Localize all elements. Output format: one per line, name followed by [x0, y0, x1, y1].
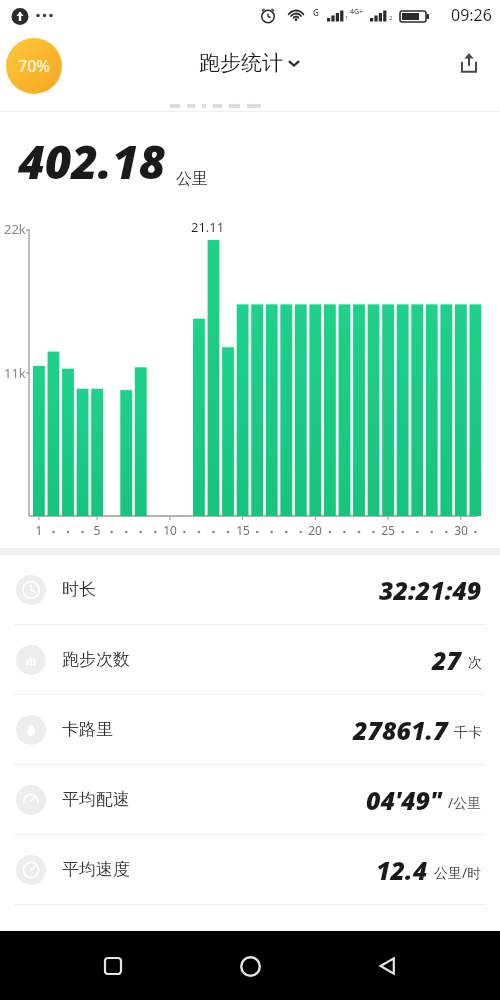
- staticText: 402.18: [18, 130, 166, 193]
- staticText: 2: [389, 14, 393, 22]
- button[interactable]: 卡路里: [0, 695, 500, 764]
- staticText: 27: [432, 643, 462, 677]
- staticText: 4G+: [350, 7, 364, 17]
- button[interactable]: Back: [363, 942, 411, 990]
- button[interactable]: 跑步统计: [199, 50, 301, 76]
- staticText: 5: [88, 522, 106, 538]
- staticText: 27861.7: [353, 713, 448, 747]
- staticText: 30: [452, 522, 470, 538]
- staticText: 10: [161, 522, 179, 538]
- button[interactable]: Home: [226, 942, 274, 990]
- staticText: 15: [234, 522, 252, 538]
- staticText: G: [313, 7, 319, 18]
- staticText: 04'49": [366, 783, 442, 817]
- staticText: 12.4: [376, 853, 428, 887]
- staticText: 跑步统计: [199, 50, 283, 76]
- staticText: 时长: [62, 579, 96, 600]
- button[interactable]: 平均配速: [0, 765, 500, 834]
- staticText: 32:21:49: [379, 573, 482, 607]
- staticText: 1: [345, 14, 349, 22]
- staticText: 70%: [18, 55, 50, 77]
- staticText: 1: [30, 522, 48, 538]
- staticText: 22k: [4, 220, 26, 238]
- staticText: 跑步次数: [62, 649, 130, 670]
- staticText: 千卡: [454, 724, 482, 742]
- staticText: 次: [468, 654, 482, 672]
- staticText: 公里/时: [434, 863, 482, 882]
- staticText: 09:26: [451, 4, 492, 26]
- button[interactable]: 跑步次数: [0, 625, 500, 694]
- staticText: 卡路里: [62, 719, 113, 740]
- staticText: 公里: [176, 169, 208, 189]
- staticText: 25: [379, 522, 397, 538]
- staticText: 11k: [4, 364, 26, 382]
- button[interactable]: Battery 70 percent: [6, 38, 62, 94]
- staticText: 平均配速: [62, 789, 130, 810]
- staticText: 平均速度: [62, 859, 130, 880]
- button[interactable]: 时长: [0, 555, 500, 624]
- staticText: /公里: [448, 793, 482, 812]
- staticText: 21.11: [191, 218, 225, 236]
- button[interactable]: Share: [452, 46, 486, 80]
- staticText: 20: [306, 522, 324, 538]
- button[interactable]: Recent apps: [89, 942, 137, 990]
- button[interactable]: 平均速度: [0, 835, 500, 904]
